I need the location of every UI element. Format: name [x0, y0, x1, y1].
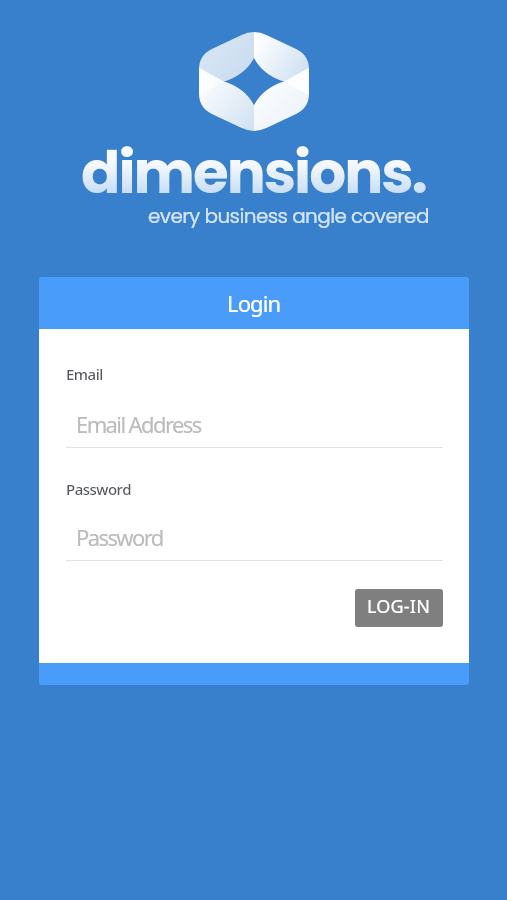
staticText: Email Address: [76, 409, 201, 439]
staticText: Password: [66, 479, 131, 499]
staticText: Email: [66, 364, 103, 384]
staticText: dimensions.: [81, 132, 426, 213]
staticText: Login: [227, 288, 281, 318]
button[interactable]: LOG-IN: [355, 589, 443, 627]
staticText: every business angle covered: [148, 202, 429, 230]
button[interactable]: Email Address: [66, 409, 443, 448]
staticText: Password: [76, 522, 163, 552]
staticText: LOG-IN: [367, 594, 431, 619]
other: dimensions logo: [199, 29, 309, 134]
button[interactable]: Password: [66, 522, 443, 561]
